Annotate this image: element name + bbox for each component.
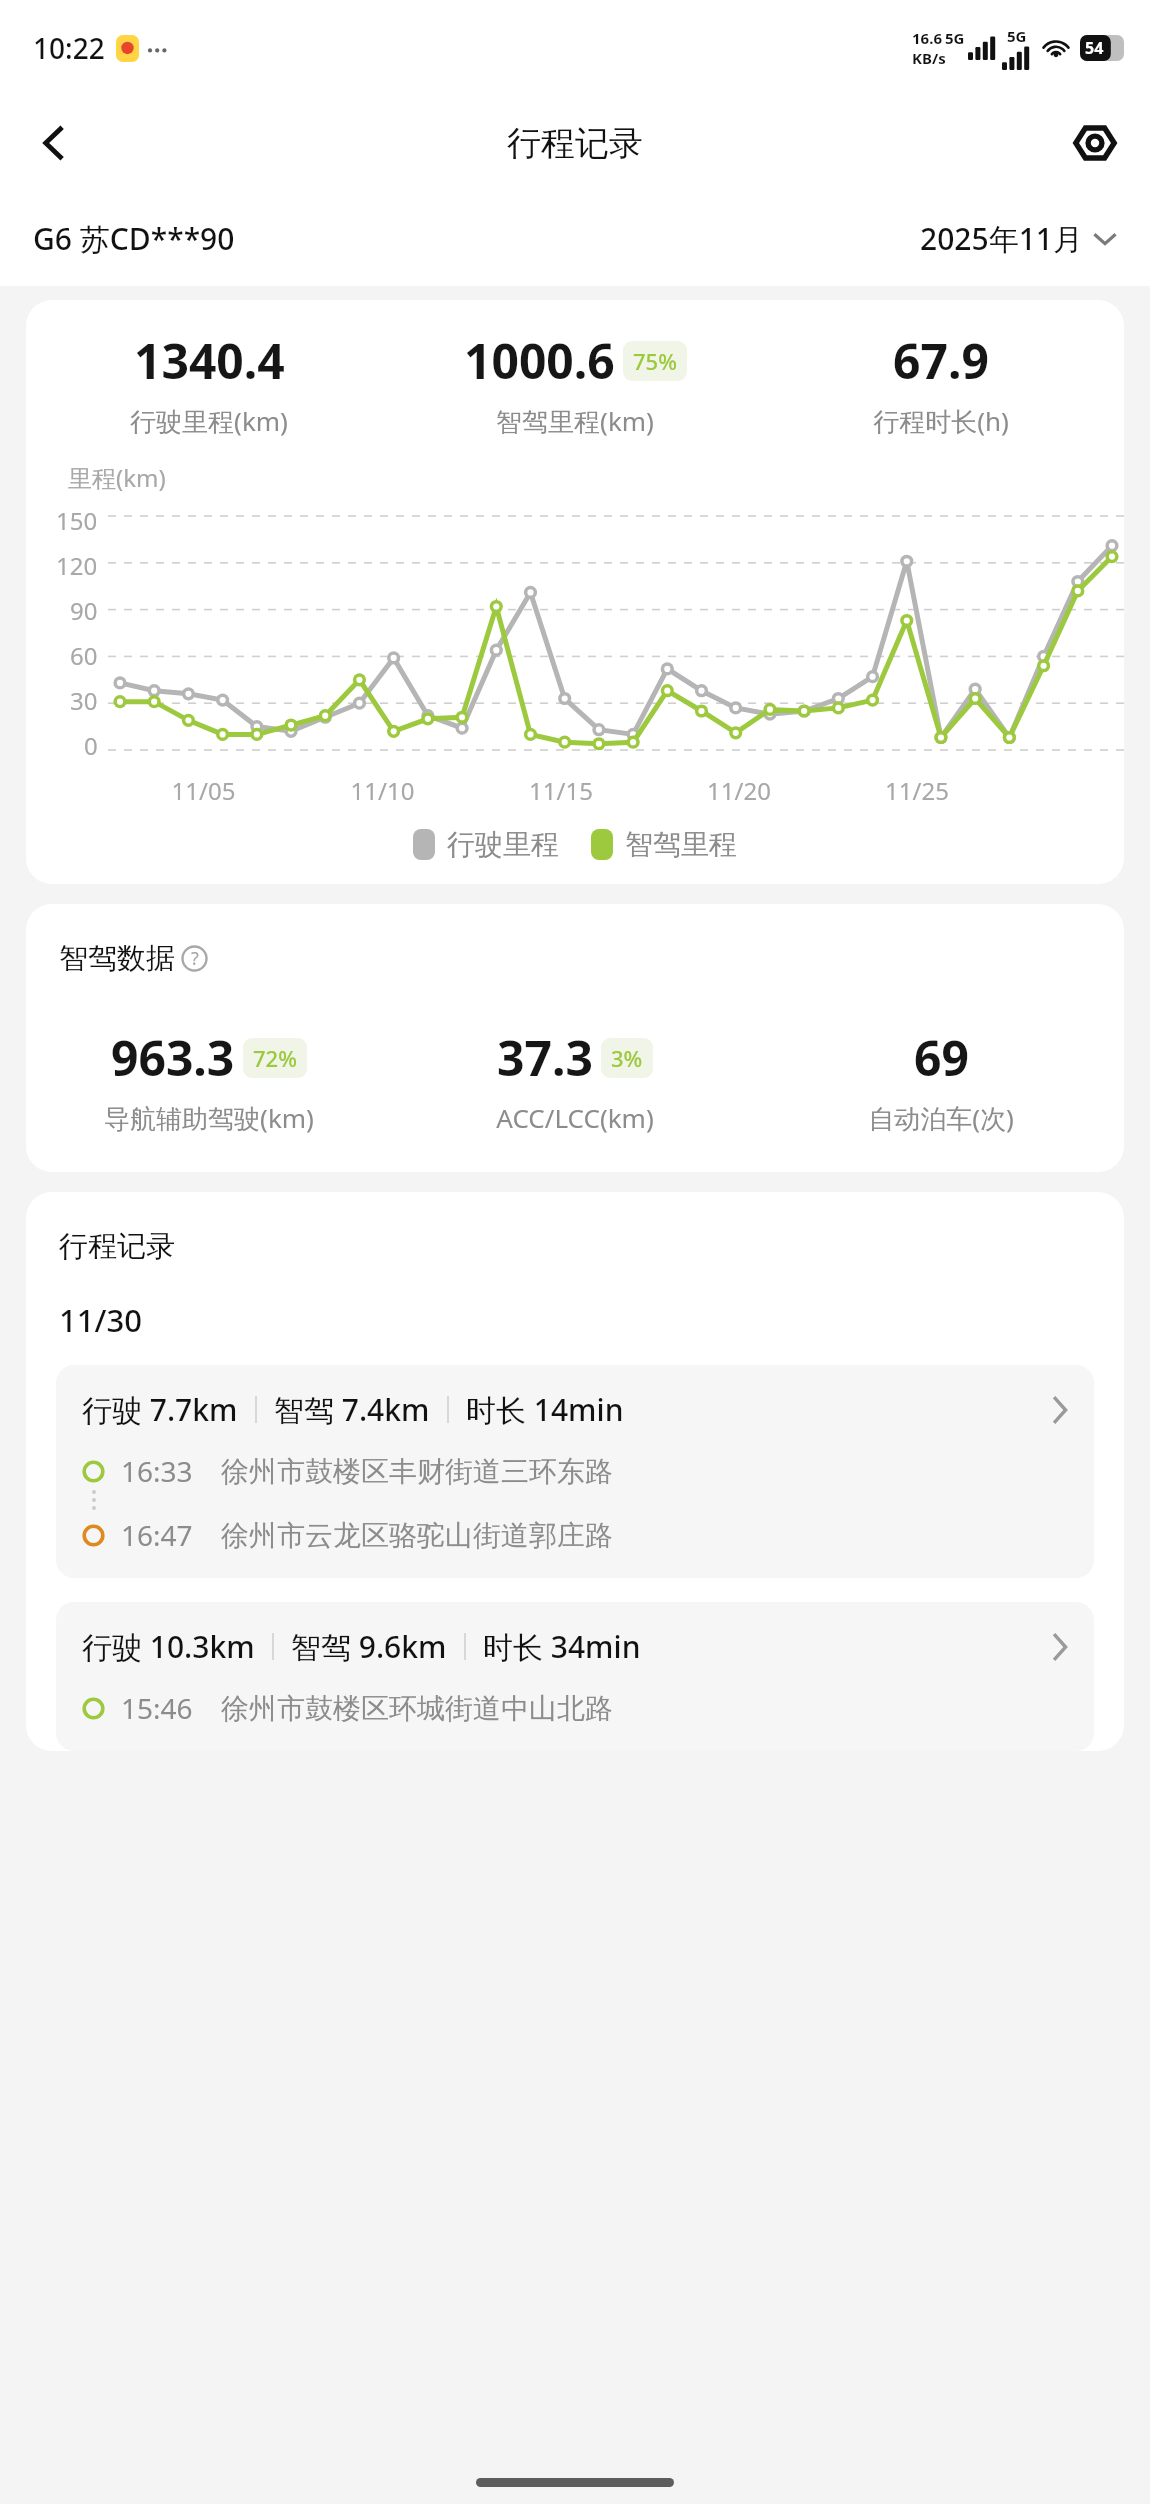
staticText: 行驶里程 [447, 827, 559, 862]
staticText: 10:22 [33, 29, 105, 67]
staticText: G6 苏CD***90 [33, 218, 235, 259]
staticText: ACC/LCC(km) [496, 1100, 654, 1135]
button[interactable]: Back [22, 111, 86, 175]
button[interactable]: 行驶 7.7km [56, 1365, 1094, 1578]
staticText: 时长 34min [483, 1626, 641, 1667]
staticText: 120 [56, 549, 98, 582]
staticText: 30 [70, 684, 98, 717]
staticText: 15:46 [121, 1689, 193, 1727]
staticText: KB/s [912, 48, 946, 68]
staticText: 11/15 [472, 774, 650, 807]
staticText: 行驶 10.3km [82, 1626, 255, 1667]
staticText: 16.6 [912, 28, 942, 48]
staticText: 60 [70, 639, 98, 672]
staticText: 徐州市鼓楼区丰财街道三环东路 [221, 1454, 613, 1489]
staticText: 里程(km) [68, 461, 166, 494]
staticText: 5G [945, 28, 965, 48]
staticText: 11/20 [650, 774, 828, 807]
staticText: 智驾里程 [625, 827, 737, 862]
staticText: 37.3 [497, 1025, 593, 1090]
staticText: 72% [253, 1043, 297, 1073]
staticText: 150 [56, 504, 98, 537]
button[interactable]: Settings [1062, 110, 1128, 176]
staticText: 11/05 [114, 774, 293, 807]
staticText: 11/25 [828, 774, 1006, 807]
staticText: ? [191, 946, 199, 971]
staticText: 1340.4 [134, 328, 285, 393]
staticText: 69 [914, 1025, 969, 1090]
button[interactable]: 行驶 10.3km [56, 1602, 1094, 1751]
staticText: 智驾数据 [59, 940, 175, 977]
staticText: 75% [633, 346, 677, 376]
staticText: 67.9 [893, 328, 989, 393]
staticText: 行程记录 [59, 1228, 175, 1265]
button[interactable]: Help [181, 945, 208, 972]
staticText: 54 [1085, 37, 1104, 59]
staticText: 16:47 [121, 1516, 193, 1554]
button[interactable]: 2025年11月 [920, 210, 1117, 267]
staticText: 963.3 [111, 1025, 235, 1090]
staticText: 行程记录 [507, 122, 643, 165]
staticText: 5G [1007, 26, 1027, 46]
staticText: 时长 14min [466, 1389, 624, 1430]
staticText: 90 [70, 594, 98, 627]
staticText: 徐州市云龙区骆驼山街道郭庄路 [221, 1518, 613, 1553]
staticText: 11/10 [293, 774, 472, 807]
staticText: 智驾 7.4km [274, 1389, 430, 1430]
staticText: 行驶里程(km) [130, 403, 288, 439]
staticText: 11/30 [59, 1299, 142, 1341]
staticText: 1000.6 [464, 328, 615, 393]
staticText: 2025年11月 [920, 218, 1083, 259]
staticText: 行驶 7.7km [82, 1389, 238, 1430]
staticText: 3% [611, 1043, 643, 1073]
staticText: 智驾 9.6km [291, 1626, 447, 1667]
staticText: 徐州市鼓楼区环城街道中山北路 [221, 1691, 613, 1726]
staticText: 16:33 [121, 1452, 193, 1490]
staticText: 行程时长(h) [873, 403, 1009, 439]
staticText: 0 [84, 729, 98, 762]
staticText: 智驾里程(km) [496, 403, 654, 439]
staticText: 导航辅助驾驶(km) [104, 1100, 314, 1136]
staticText: 自动泊车(次) [868, 1100, 1014, 1136]
